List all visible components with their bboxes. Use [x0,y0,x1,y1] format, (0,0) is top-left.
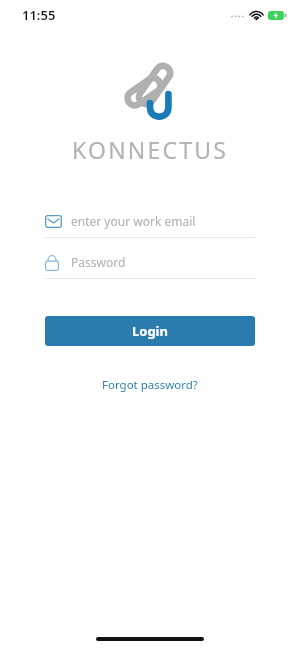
button[interactable]: Forgot password? [92,373,208,397]
staticText: enter your work email [71,213,196,229]
other: Email [45,215,62,228]
staticText: KONNECTUS [72,134,229,165]
button[interactable]: Password [45,246,255,279]
button[interactable]: Email [45,205,255,238]
staticText: Password [71,254,126,270]
staticText: Login [132,322,168,340]
staticText: Forgot password? [102,377,198,393]
other: Password [45,254,59,271]
button[interactable]: Login [45,316,255,346]
staticText: 11:55 [22,6,56,24]
